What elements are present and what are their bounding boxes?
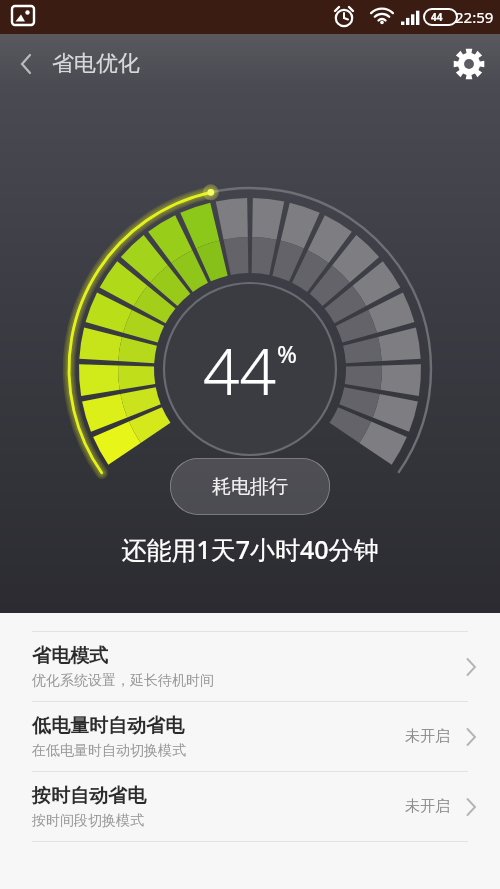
- button[interactable]: Settings: [438, 34, 500, 93]
- staticText: 按时自动省电: [32, 784, 146, 808]
- staticText: 44: [431, 10, 443, 24]
- staticText: 22:59: [455, 7, 494, 27]
- button[interactable]: 省电模式: [0, 632, 500, 701]
- staticText: 未开启: [405, 727, 450, 746]
- staticText: 在低电量时自动切换模式: [32, 742, 186, 760]
- staticText: 优化系统设置，延长待机时间: [32, 672, 214, 690]
- button[interactable]: 按时自动省电: [0, 772, 500, 841]
- button[interactable]: 低电量时自动省电: [0, 702, 500, 771]
- staticText: 耗电排行: [212, 475, 288, 499]
- staticText: 按时间段切换模式: [32, 812, 144, 830]
- button[interactable]: 耗电排行: [170, 458, 330, 515]
- staticText: 还能用1天7小时40分钟: [121, 532, 379, 566]
- staticText: 未开启: [405, 797, 450, 816]
- staticText: 省电优化: [52, 50, 140, 78]
- staticText: 低电量时自动省电: [32, 714, 184, 738]
- button[interactable]: Back: [0, 34, 52, 93]
- staticText: %: [277, 337, 297, 370]
- staticText: 省电模式: [32, 644, 108, 668]
- staticText: 44: [203, 327, 277, 414]
